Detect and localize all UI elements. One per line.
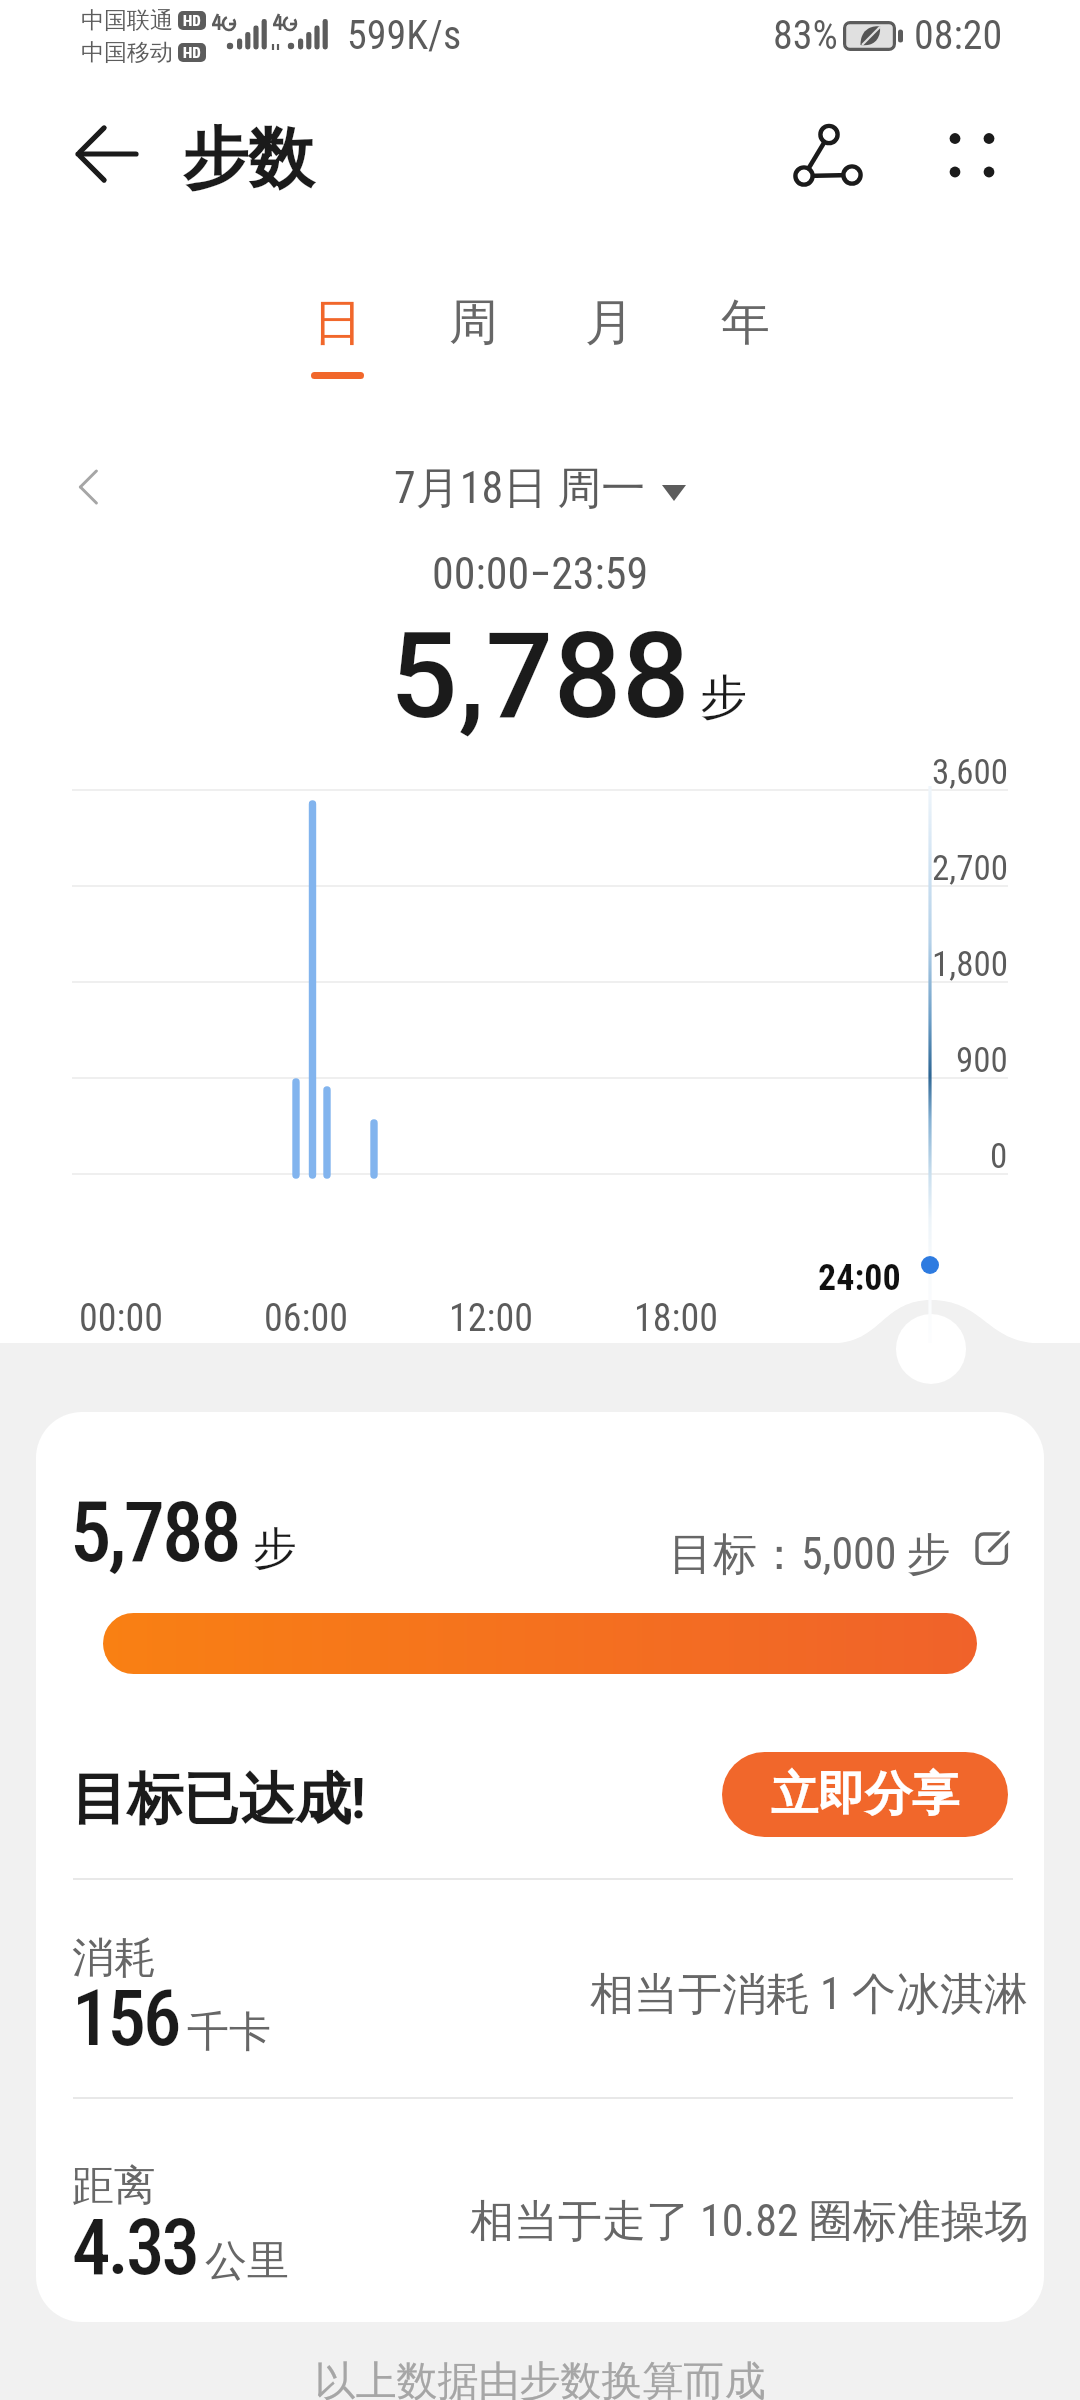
staticText: 7月18日 周一 (394, 461, 646, 516)
staticText: 18:00 (634, 1296, 718, 1341)
button[interactable]: 年 (681, 292, 809, 392)
staticText: 2,700 (932, 848, 1008, 889)
staticText: 900 (956, 1040, 1008, 1081)
staticText: 距离 (72, 2160, 156, 2213)
button[interactable]: 周 (409, 292, 537, 392)
staticText: 目标：5,000 步 (669, 1527, 951, 1582)
staticText: 00:00 (79, 1296, 163, 1341)
button[interactable]: 立即分享 (722, 1752, 1008, 1837)
staticText: 月 (585, 292, 634, 354)
staticText: 千卡 (187, 2006, 271, 2059)
staticText: 步数 (182, 117, 314, 200)
staticText: 0 (990, 1136, 1008, 1177)
staticText: 83% (773, 12, 838, 59)
staticText: 日 (313, 292, 362, 354)
staticText: 周 (449, 292, 498, 354)
staticText: 156 (72, 1974, 179, 2064)
staticText: 公里 (205, 2235, 289, 2288)
button[interactable]: 日 (273, 292, 401, 392)
staticText: 相当于走了 10.82 圈标准操场 (470, 2194, 1029, 2249)
staticText: HD (183, 44, 201, 62)
button[interactable]: More options (927, 110, 1017, 200)
staticText: 5,788 (70, 1484, 239, 1581)
button[interactable]: Back (78, 125, 136, 183)
staticText: 3,600 (932, 752, 1008, 793)
staticText: 步 (700, 668, 747, 727)
staticText: HD (183, 12, 201, 30)
button[interactable]: Share (782, 110, 874, 202)
staticText: 相当于消耗 1 个冰淇淋 (590, 1967, 1028, 2022)
staticText: 步 (253, 1521, 297, 1576)
staticText: 以上数据由步数换算而成 (0, 2356, 1080, 2400)
button[interactable]: Previous day (54, 451, 126, 523)
staticText: 08:20 (914, 12, 1003, 59)
staticText: 12:00 (449, 1296, 533, 1341)
staticText: 年 (721, 292, 770, 354)
staticText: 06:00 (264, 1296, 348, 1341)
staticText: 24:00 (818, 1257, 901, 1299)
staticText: 4.33 (72, 2203, 197, 2293)
button[interactable]: Edit goal (977, 1534, 1019, 1576)
staticText: 消耗 (72, 1932, 156, 1985)
staticText: 599K/s (347, 12, 462, 59)
staticText: 00:00−23:59 (432, 548, 649, 600)
staticText: 中国联通 (81, 6, 173, 35)
staticText: 5,788 (390, 607, 691, 746)
staticText: 中国移动 (81, 38, 173, 67)
staticText: 目标已达成! (71, 1764, 366, 1835)
staticText: 1,800 (932, 944, 1008, 985)
staticText: 立即分享 (771, 1765, 959, 1824)
button[interactable]: 月 (545, 292, 673, 392)
